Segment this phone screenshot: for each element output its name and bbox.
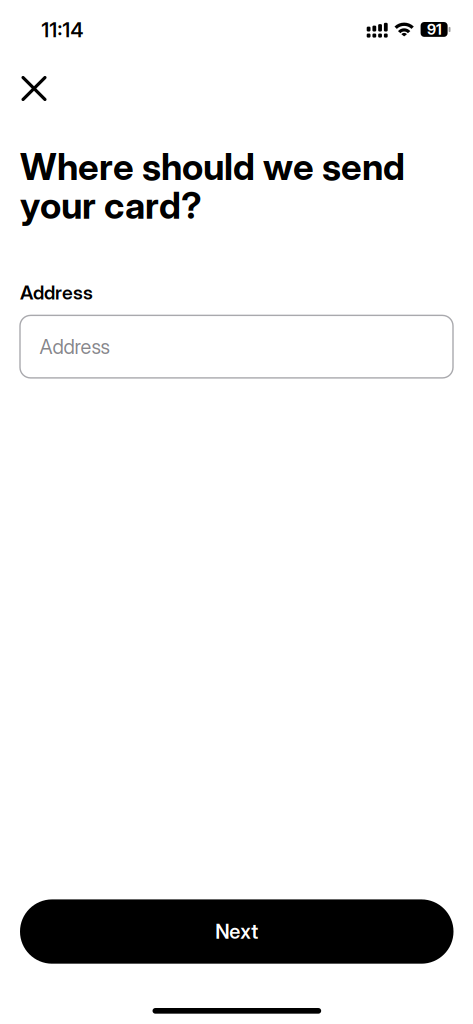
staticText: 91	[427, 21, 442, 38]
staticText: Address	[39, 335, 109, 359]
staticText: 11:14	[41, 18, 83, 42]
staticText: Address	[20, 281, 93, 304]
staticText: Where should we send	[20, 144, 405, 189]
button[interactable]: Next	[20, 899, 453, 964]
staticText: Next	[215, 919, 258, 944]
button[interactable]: Address	[20, 315, 453, 378]
staticText: your card?	[20, 183, 202, 228]
button[interactable]: Close	[12, 66, 56, 110]
